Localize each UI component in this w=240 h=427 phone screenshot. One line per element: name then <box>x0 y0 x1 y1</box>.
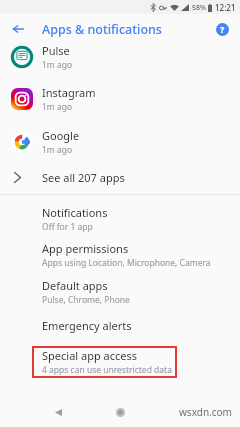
button[interactable]: Pulse <box>0 36 240 78</box>
staticText: Special app access <box>42 348 138 363</box>
button[interactable]: Home <box>110 402 130 422</box>
staticText: 1m ago <box>42 59 73 71</box>
button[interactable]: Back <box>6 17 30 41</box>
staticText: 1m ago <box>42 144 73 156</box>
staticText: Apps using Location, Microphone, Camera <box>42 257 211 269</box>
staticText: Default apps <box>42 278 108 293</box>
staticText: Pulse, Chrome, Phone <box>42 294 130 306</box>
staticText: 4 apps can use unrestricted data <box>42 364 172 376</box>
button[interactable]: Instagram <box>0 78 240 120</box>
button[interactable]: Special app access <box>33 347 176 377</box>
staticText: Notifications <box>42 205 108 220</box>
button[interactable]: Help <box>212 19 232 39</box>
staticText: wsxdn.com <box>179 405 232 419</box>
staticText: Pulse <box>42 43 70 58</box>
staticText: See all 207 apps <box>42 170 125 185</box>
button[interactable]: See all 207 apps <box>0 162 240 192</box>
button[interactable]: Notifications <box>0 204 240 234</box>
button[interactable]: Emergency alerts <box>0 314 240 336</box>
staticText: 58% <box>192 3 206 13</box>
button[interactable]: Back <box>48 402 68 422</box>
staticText: Apps & notifications <box>42 21 162 38</box>
staticText: 12:21 <box>215 2 236 13</box>
staticText: App permissions <box>42 241 129 256</box>
staticText: 1m ago <box>42 101 73 113</box>
staticText: Emergency alerts <box>42 318 132 333</box>
staticText: Instagram <box>42 85 96 100</box>
button[interactable]: Google <box>0 121 240 163</box>
button[interactable]: App permissions <box>0 240 240 270</box>
staticText: ? <box>220 23 225 35</box>
button[interactable]: Default apps <box>0 277 240 307</box>
staticText: Off for 1 app <box>42 221 93 233</box>
staticText: Google <box>42 128 80 143</box>
